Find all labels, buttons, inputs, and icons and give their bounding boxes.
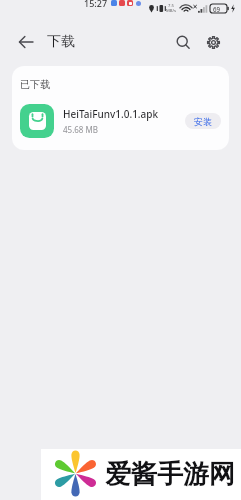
button[interactable]: Settings <box>199 28 227 56</box>
button[interactable]: Back <box>13 29 39 55</box>
button[interactable]: 安装 <box>185 113 221 129</box>
staticText: MB/s <box>166 8 177 14</box>
button[interactable]: Search <box>169 28 197 56</box>
button[interactable]: HeiTaiFunv1.0.1.apk <box>12 102 229 140</box>
staticText: HeiTaiFunv1.0.1.apk <box>63 107 159 121</box>
staticText: 已下载 <box>20 78 50 91</box>
staticText: 安装 <box>194 116 212 127</box>
staticText: 69 <box>213 5 221 13</box>
staticText: 15:27 <box>84 0 108 9</box>
staticText: 爱酱手游网 <box>105 458 235 491</box>
staticText: 7.5 <box>168 3 174 9</box>
staticText: 下载 <box>47 33 75 51</box>
staticText: 45.68 MB <box>63 124 98 135</box>
